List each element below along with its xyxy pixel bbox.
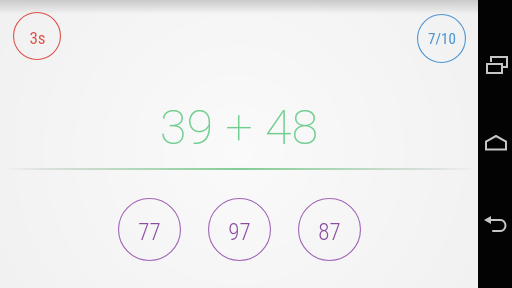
button[interactable] [486,56,508,75]
button[interactable]: 7/10 [417,14,466,63]
button[interactable] [484,216,508,234]
button[interactable]: 87 [298,198,361,261]
staticText: 7/10 [428,30,456,48]
button[interactable]: 97 [208,198,271,261]
button[interactable] [485,135,507,151]
staticText: 39 + 48 [160,99,319,155]
button[interactable]: 3s [13,12,61,60]
button[interactable]: 77 [118,198,181,261]
staticText: 87 [318,219,341,246]
staticText: 77 [138,219,161,246]
staticText: 3s [29,28,46,48]
staticText: 97 [228,219,251,246]
